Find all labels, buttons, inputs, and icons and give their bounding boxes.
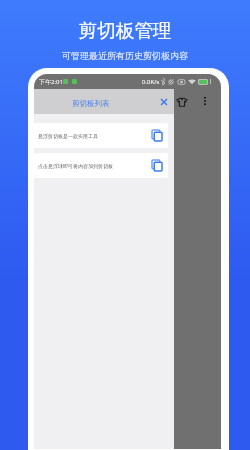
staticText: 下午2:01 — [39, 78, 63, 86]
staticText: 可管理最近所有历史剪切板内容 — [62, 50, 188, 61]
staticText: 剪切板管理 — [78, 19, 172, 43]
staticText: 剪切板列表 — [72, 99, 110, 108]
button[interactable]: 悬浮剪切板是一款实用工具 — [34, 123, 168, 148]
button[interactable]: Close — [155, 93, 173, 111]
button[interactable]: Theme — [173, 93, 191, 111]
button[interactable]: More options — [196, 92, 214, 110]
button[interactable]: 点击悬浮球即可将内容加到剪切板 — [34, 153, 168, 178]
staticText: 0.0K/s — [142, 78, 160, 86]
staticText: 悬浮剪切板是一款实用工具 — [38, 133, 98, 139]
staticText: 点击悬浮球即可将内容加到剪切板 — [38, 163, 113, 169]
